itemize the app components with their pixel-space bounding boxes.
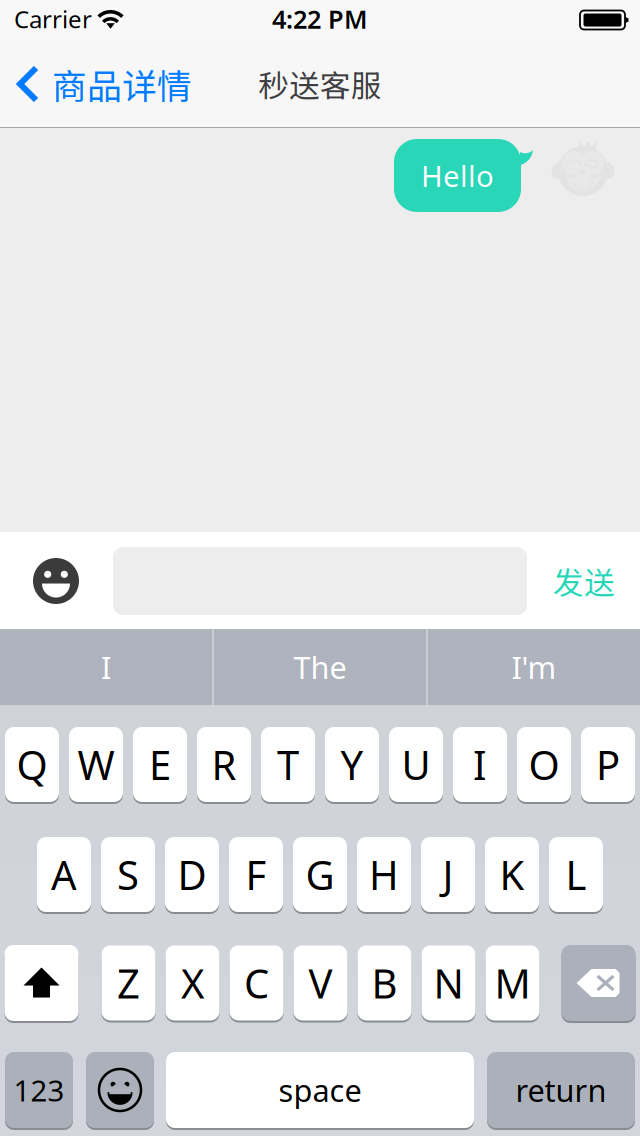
button[interactable]: 商品详情 bbox=[0, 40, 204, 128]
staticText: N bbox=[433, 956, 463, 1009]
button[interactable]: P bbox=[581, 726, 635, 803]
staticText: J bbox=[442, 848, 453, 901]
button[interactable]: K bbox=[485, 836, 539, 913]
staticText: Y bbox=[340, 738, 363, 791]
button[interactable]: space bbox=[166, 1051, 474, 1129]
staticText: 商品详情 bbox=[52, 59, 192, 109]
button[interactable]: W bbox=[69, 726, 123, 803]
staticText: W bbox=[77, 738, 114, 791]
button[interactable]: F bbox=[229, 836, 283, 913]
button[interactable] bbox=[4, 944, 78, 1022]
staticText: H bbox=[369, 848, 399, 901]
staticText: F bbox=[245, 848, 266, 901]
button[interactable]: S bbox=[101, 836, 155, 913]
staticText: 4:22 PM bbox=[272, 2, 368, 36]
button[interactable]: 发送 bbox=[529, 532, 639, 630]
staticText: R bbox=[211, 738, 236, 791]
staticText: 123 bbox=[13, 1070, 64, 1109]
staticText: Q bbox=[16, 738, 47, 791]
staticText: E bbox=[149, 738, 171, 791]
staticText: space bbox=[278, 1070, 361, 1110]
button[interactable]: R bbox=[197, 726, 251, 803]
staticText: O bbox=[528, 738, 559, 791]
button[interactable]: Y bbox=[325, 726, 379, 803]
button[interactable]: D bbox=[165, 836, 219, 913]
staticText: B bbox=[371, 956, 397, 1009]
button[interactable]: Q bbox=[5, 726, 59, 803]
button[interactable]: Z bbox=[101, 944, 155, 1021]
staticText: Carrier bbox=[14, 3, 92, 35]
button[interactable]: G bbox=[293, 836, 347, 913]
staticText: Hello bbox=[421, 156, 494, 195]
staticText: I bbox=[101, 647, 111, 687]
staticText: C bbox=[244, 956, 269, 1009]
button[interactable] bbox=[561, 944, 635, 1022]
button[interactable]: O bbox=[517, 726, 571, 803]
staticText: X bbox=[181, 956, 204, 1009]
staticText: A bbox=[51, 848, 77, 901]
staticText: U bbox=[401, 738, 430, 791]
button[interactable]: X bbox=[165, 944, 219, 1021]
staticText: The bbox=[293, 647, 346, 687]
staticText: K bbox=[499, 848, 524, 901]
button[interactable]: H bbox=[357, 836, 411, 913]
button[interactable]: 123 bbox=[5, 1051, 73, 1129]
button[interactable]: J bbox=[421, 836, 475, 913]
button[interactable]: I bbox=[0, 629, 212, 705]
staticText: M bbox=[494, 956, 530, 1009]
staticText: 秒送客服 bbox=[258, 62, 382, 106]
button[interactable]: U bbox=[389, 726, 443, 803]
button[interactable]: M bbox=[485, 944, 539, 1021]
staticText: S bbox=[117, 848, 139, 901]
staticText: 发送 bbox=[553, 559, 615, 603]
staticText: V bbox=[308, 956, 332, 1009]
button[interactable]: C bbox=[229, 944, 283, 1021]
button[interactable]: B bbox=[357, 944, 411, 1021]
staticText: P bbox=[596, 738, 620, 791]
staticText: T bbox=[277, 738, 299, 791]
staticText: D bbox=[177, 848, 206, 901]
staticText: Z bbox=[117, 956, 140, 1009]
staticText: I'm bbox=[511, 647, 556, 687]
button[interactable]: N bbox=[421, 944, 475, 1021]
button[interactable]: return bbox=[487, 1051, 635, 1129]
button[interactable]: V bbox=[293, 944, 347, 1021]
staticText: I bbox=[473, 738, 487, 791]
button[interactable]: I bbox=[453, 726, 507, 803]
button[interactable] bbox=[86, 1051, 154, 1129]
button[interactable]: T bbox=[261, 726, 315, 803]
button[interactable]: A bbox=[37, 836, 91, 913]
button[interactable]: The bbox=[214, 629, 426, 705]
button[interactable]: I'm bbox=[428, 629, 640, 705]
button[interactable]: E bbox=[133, 726, 187, 803]
button[interactable]: Emoji bbox=[11, 532, 101, 630]
staticText: L bbox=[565, 848, 586, 901]
button[interactable]: L bbox=[549, 836, 603, 913]
staticText: G bbox=[305, 848, 334, 901]
staticText: return bbox=[515, 1070, 606, 1110]
